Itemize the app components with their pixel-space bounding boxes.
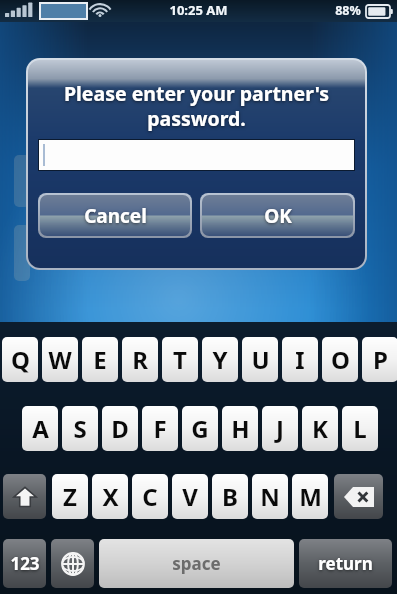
button[interactable]: OK (202, 195, 353, 236)
staticText: 88% (335, 2, 361, 19)
staticText: space (172, 552, 221, 575)
staticText: C (142, 480, 158, 513)
button[interactable]: B (212, 474, 248, 519)
staticText: O (331, 343, 350, 376)
button[interactable]: M (292, 474, 328, 519)
button[interactable]: N (252, 474, 288, 519)
staticText: 10:25 AM (169, 1, 228, 19)
staticText: J (276, 412, 284, 445)
button[interactable]: P (362, 337, 397, 382)
button[interactable]: 123 (3, 539, 46, 588)
button[interactable]: return (299, 539, 392, 588)
button[interactable]: I (282, 337, 318, 382)
button[interactable]: Cancel (40, 195, 190, 236)
staticText: H (231, 412, 250, 445)
button[interactable]: space (99, 539, 294, 588)
staticText: Q (11, 343, 30, 376)
button[interactable]: S (62, 406, 98, 451)
staticText: K (312, 412, 328, 445)
button[interactable]: E (82, 337, 118, 382)
button[interactable]: A (22, 406, 58, 451)
staticText: V (182, 480, 198, 513)
staticText: N (260, 480, 280, 513)
staticText: B (222, 480, 238, 513)
button[interactable]: W (42, 337, 78, 382)
staticText: OK (264, 203, 292, 229)
staticText: X (102, 480, 119, 513)
staticText: S (73, 412, 87, 445)
button[interactable]: Change keyboard language (51, 539, 94, 588)
staticText: I (295, 343, 305, 376)
staticText: T (173, 343, 187, 376)
button[interactable]: D (102, 406, 138, 451)
staticText: return (318, 552, 373, 575)
button[interactable]: Z (52, 474, 88, 519)
button[interactable]: Backspace (334, 474, 383, 519)
button[interactable]: R (122, 337, 158, 382)
button[interactable]: V (172, 474, 208, 519)
staticText: L (353, 412, 367, 445)
button[interactable]: Shift (3, 474, 46, 519)
staticText: D (111, 412, 129, 445)
button[interactable]: L (342, 406, 378, 451)
staticText: Please enter your partner's password. (40, 80, 353, 131)
staticText: A (32, 412, 49, 445)
button[interactable]: H (222, 406, 258, 451)
button[interactable] (39, 140, 354, 170)
button[interactable]: G (182, 406, 218, 451)
staticText: U (251, 343, 270, 376)
staticText: P (373, 343, 388, 376)
button[interactable]: F (142, 406, 178, 451)
staticText: E (93, 343, 107, 376)
staticText: R (132, 343, 148, 376)
button[interactable]: X (92, 474, 128, 519)
staticText: Y (212, 343, 228, 376)
button[interactable]: K (302, 406, 338, 451)
button[interactable]: O (322, 337, 358, 382)
button[interactable]: Q (2, 337, 38, 382)
staticText: M (299, 480, 322, 513)
button[interactable]: J (262, 406, 298, 451)
staticText: W (48, 343, 72, 376)
staticText: F (153, 412, 167, 445)
button[interactable]: U (242, 337, 278, 382)
staticText: 123 (10, 552, 40, 575)
staticText: Cancel (84, 203, 147, 229)
staticText: G (191, 412, 209, 445)
button[interactable]: T (162, 337, 198, 382)
staticText: Z (63, 480, 77, 513)
button[interactable]: C (132, 474, 168, 519)
button[interactable]: Y (202, 337, 238, 382)
